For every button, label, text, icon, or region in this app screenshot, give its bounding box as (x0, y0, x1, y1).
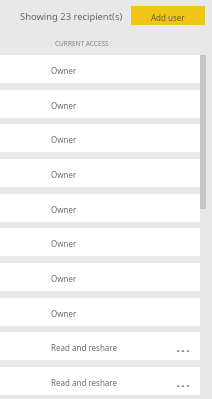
button[interactable]: More options (173, 336, 193, 356)
button[interactable]: Owner (0, 194, 200, 222)
staticText: Owner (51, 238, 77, 249)
staticText: Read and reshare (51, 377, 117, 388)
staticText: CURRENT ACCESS (55, 39, 109, 48)
button[interactable]: Read and reshare (0, 367, 200, 395)
staticText: Owner (51, 169, 77, 180)
button[interactable]: Owner (0, 55, 200, 83)
button[interactable]: Owner (0, 298, 200, 326)
button[interactable]: Owner (0, 263, 200, 291)
staticText: Read and reshare (51, 342, 117, 353)
staticText: Owner (51, 308, 77, 319)
button[interactable]: Owner (0, 228, 200, 256)
staticText: Owner (51, 273, 77, 284)
staticText: Showing 23 recipient(s) (20, 10, 123, 23)
button[interactable]: Add user (131, 6, 205, 25)
staticText: Add user (151, 12, 185, 23)
button[interactable]: Read and reshare (0, 332, 200, 360)
button[interactable]: Owner (0, 159, 200, 187)
staticText: Owner (51, 134, 77, 145)
button[interactable]: Owner (0, 124, 200, 152)
button[interactable]: More options (173, 371, 193, 391)
staticText: Owner (51, 204, 77, 215)
button[interactable]: Owner (0, 90, 200, 118)
staticText: Owner (51, 65, 77, 76)
staticText: Owner (51, 100, 77, 111)
